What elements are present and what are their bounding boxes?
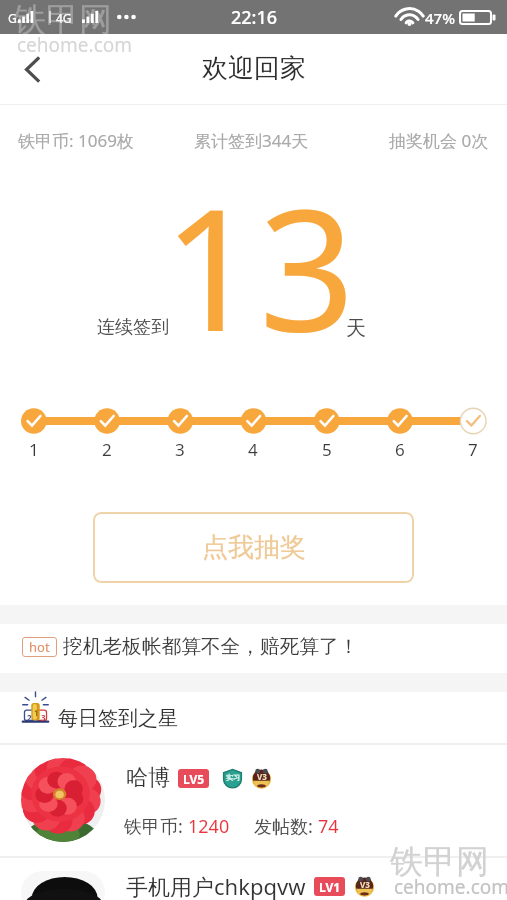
staticText: 实习: [226, 773, 240, 782]
staticText: 6: [395, 438, 405, 461]
button[interactable]: 2: [0, 692, 507, 743]
staticText: 5: [322, 438, 332, 461]
button[interactable]: hot: [0, 624, 507, 673]
staticText: LV5: [183, 771, 205, 787]
button[interactable]: Back: [0, 34, 64, 104]
staticText: 累计签到344天: [194, 129, 309, 152]
staticText: 哈博: [126, 764, 170, 792]
staticText: 3: [175, 438, 185, 461]
button[interactable]: 哈博: [0, 744, 507, 856]
staticText: 抽奖机会 0次: [389, 129, 489, 152]
staticText: 2: [102, 438, 112, 461]
staticText: 13: [163, 151, 356, 380]
button[interactable]: 手机用户chkpqvw: [0, 857, 507, 900]
staticText: 22:16: [231, 5, 278, 30]
staticText: V3: [257, 771, 267, 782]
staticText: 47%: [425, 8, 455, 28]
button[interactable]: 点我抽奖: [93, 512, 414, 583]
staticText: 4G: [56, 10, 72, 26]
staticText: 手机用户chkpqvw: [126, 871, 306, 900]
staticText: 1: [34, 707, 39, 718]
staticText: 4: [248, 438, 258, 461]
staticText: cehome.com: [17, 32, 133, 58]
staticText: G: [8, 10, 17, 26]
staticText: 天: [346, 316, 366, 341]
staticText: 欢迎回家: [202, 52, 306, 85]
staticText: 挖机老板帐都算不全，赔死算了！: [63, 634, 359, 659]
staticText: 7: [468, 438, 478, 461]
staticText: 74: [318, 814, 339, 839]
staticText: 1240: [188, 814, 230, 839]
staticText: 铁甲币:: [124, 814, 188, 839]
staticText: 3: [41, 712, 46, 723]
staticText: 1: [29, 438, 39, 461]
staticText: 铁甲网: [390, 841, 489, 883]
staticText: 每日签到之星: [58, 706, 178, 731]
staticText: 发帖数:: [254, 814, 318, 839]
staticText: 点我抽奖: [202, 531, 306, 564]
staticText: 2: [27, 712, 32, 723]
staticText: V3: [360, 879, 370, 890]
staticText: 铁甲网: [13, 0, 112, 41]
staticText: 铁甲币: 1069枚: [18, 129, 134, 152]
staticText: cehome.com: [394, 874, 507, 900]
staticText: 连续签到: [97, 316, 169, 339]
staticText: hot: [29, 638, 50, 656]
staticText: LV1: [319, 879, 341, 895]
